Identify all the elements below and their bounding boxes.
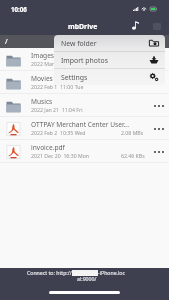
staticText: -iPhone.loc [98, 269, 125, 276]
button[interactable]: Row options [149, 48, 169, 71]
button[interactable]: Row options [149, 94, 169, 117]
staticText: 2022 Feb 2 10:35 Wed [31, 129, 86, 136]
button[interactable]: OTTPAY Merchant Center User... [0, 117, 169, 140]
staticText: 2021 Dec 20 16:30 Mon [31, 152, 90, 159]
staticText: 10:06 [11, 5, 27, 13]
staticText: mbDrive [68, 22, 98, 31]
button[interactable]: Music player [126, 16, 145, 35]
button[interactable]: New folder [54, 35, 165, 51]
staticText: Import photos [61, 56, 108, 65]
staticText: OTTPAY Merchant Center User... [31, 120, 134, 129]
staticText: Movies [31, 74, 134, 83]
staticText: al:9000/ [77, 275, 97, 282]
button[interactable]: Row options [149, 117, 169, 140]
button[interactable]: Row options [149, 140, 169, 163]
button[interactable]: Movies [0, 71, 169, 94]
button[interactable]: More options [147, 17, 166, 35]
button[interactable]: Row options [149, 71, 169, 94]
staticText: 62.46 KBs [121, 152, 145, 159]
staticText: New folder [61, 39, 97, 48]
staticText: Images [31, 51, 134, 60]
button[interactable]: Import photos [54, 52, 165, 68]
staticText: 2022 Jan 21 11:04 Fri [31, 106, 83, 113]
button[interactable]: Musics [0, 94, 169, 117]
staticText: 2022 Mar 3 09:12 Thu [31, 60, 85, 67]
staticText: Connect to: http:// [27, 269, 72, 276]
button[interactable]: Settings [54, 69, 165, 85]
staticText: invoice.pdf [31, 143, 134, 152]
button[interactable]: / [0, 35, 169, 48]
button[interactable]: invoice.pdf [0, 140, 169, 163]
staticText: Musics [31, 97, 134, 106]
staticText: / [5, 37, 8, 47]
staticText: 2.08 MBs [121, 129, 144, 136]
staticText: Settings [61, 73, 88, 82]
button[interactable]: Images [0, 48, 169, 71]
staticText: 2022 Feb 1 11:00 Tue [31, 83, 84, 90]
